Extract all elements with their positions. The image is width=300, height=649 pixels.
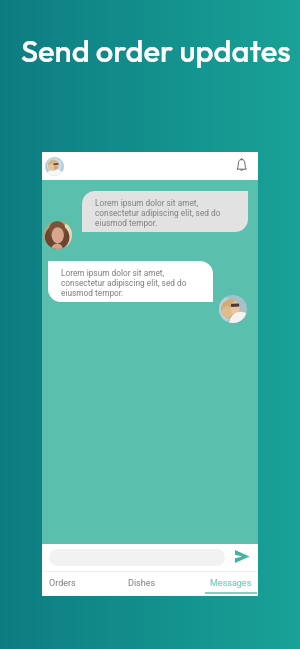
button[interactable]: Lorem ipsum dolor sit amet, consectetur … [48, 261, 213, 302]
staticText: Orders [49, 578, 76, 589]
staticText: Dishes [128, 578, 156, 589]
staticText: Lorem ipsum dolor sit amet, consectetur … [95, 198, 221, 228]
button[interactable]: Messages [197, 572, 265, 596]
button[interactable]: Dishes [108, 572, 176, 596]
button[interactable]: Send [233, 549, 251, 564]
staticText: Messages [210, 578, 252, 589]
staticText: Lorem ipsum dolor sit amet, consectetur … [61, 268, 187, 298]
staticText: Send order updates [21, 31, 291, 70]
button[interactable]: Orders [28, 572, 96, 596]
button[interactable]: Notifications [233, 157, 251, 173]
button[interactable]: Lorem ipsum dolor sit amet, consectetur … [82, 191, 248, 232]
